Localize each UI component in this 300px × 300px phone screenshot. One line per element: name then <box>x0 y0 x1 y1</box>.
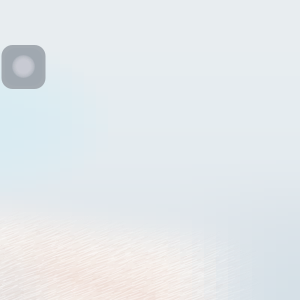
button[interactable]: Back <box>1 45 45 89</box>
